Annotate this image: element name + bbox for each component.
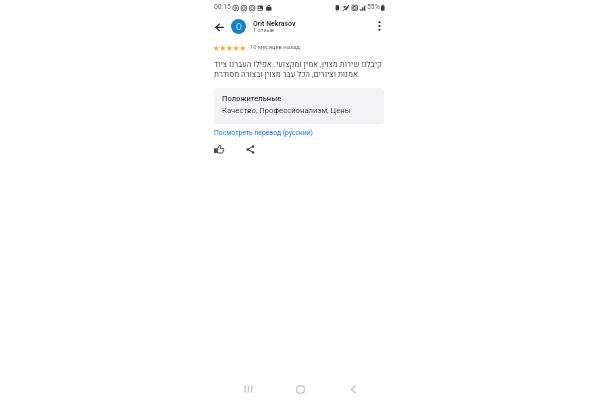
staticText: 00:15 — [214, 3, 231, 11]
staticText: Orit Nekrasov — [253, 20, 296, 28]
staticText: Качество, Профессионализм, Цены — [222, 106, 351, 115]
staticText: Посмотреть перевод (русский) — [214, 129, 313, 137]
button[interactable]: Like — [212, 142, 226, 156]
button[interactable]: More options — [371, 18, 387, 34]
staticText: 55% — [367, 3, 380, 11]
button[interactable]: Back — [211, 18, 228, 35]
staticText: Положительные — [222, 94, 282, 103]
staticText: 1 отзыв — [253, 27, 275, 34]
staticText: 10 месяцев назад — [250, 44, 300, 51]
button[interactable]: Share — [243, 142, 257, 156]
button[interactable]: Посмотреть перевод (русский) — [212, 128, 315, 138]
button[interactable]: Recent apps — [238, 379, 258, 399]
button[interactable]: Home — [290, 379, 310, 399]
staticText: O — [236, 22, 242, 32]
staticText: קיבלנו שירות מצוין, אמין ומקצועי. אפילו … — [214, 59, 386, 81]
button[interactable]: Back — [343, 379, 363, 399]
